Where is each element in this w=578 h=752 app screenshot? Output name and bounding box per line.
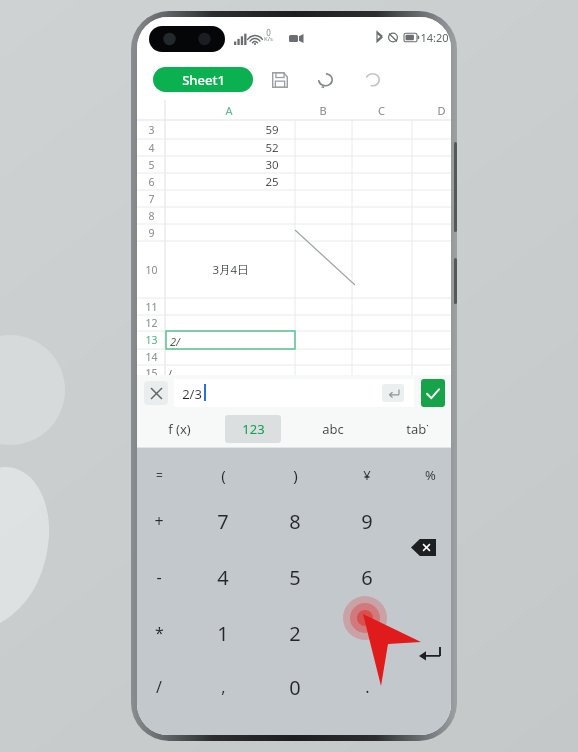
button[interactable]: 5 (264, 556, 326, 598)
button[interactable]: New line (382, 384, 404, 402)
staticText: 14 (145, 350, 158, 364)
staticText: K/s (264, 35, 273, 43)
button[interactable]: 7 (192, 500, 254, 542)
staticText: 2/3 (182, 385, 202, 403)
staticText: , (221, 676, 226, 698)
button[interactable]: Enter (409, 633, 451, 673)
button[interactable]: * (137, 612, 190, 654)
staticText: tab˙ (406, 420, 429, 438)
button[interactable]: Undo (313, 67, 339, 93)
staticText: / (156, 676, 162, 698)
staticText: A (225, 103, 233, 118)
button[interactable]: - (137, 556, 190, 598)
staticText: 7 (217, 508, 229, 535)
staticText: 1 (217, 620, 229, 647)
staticText: . (365, 676, 370, 698)
staticText: - (156, 566, 162, 588)
staticText: 9 (361, 508, 373, 535)
button[interactable]: 1 (192, 612, 254, 654)
button[interactable]: abc (305, 415, 361, 443)
button[interactable]: Cancel (144, 381, 168, 405)
staticText: 15 (145, 366, 158, 380)
button[interactable]: = (137, 454, 190, 496)
button[interactable]: % (399, 454, 451, 496)
button[interactable]: tab˙ (389, 415, 445, 443)
staticText: 30 (265, 157, 279, 173)
staticText: 8 (289, 508, 301, 535)
staticText: 9 (148, 226, 155, 240)
button[interactable]: 6 (336, 556, 398, 598)
staticText: + (154, 510, 164, 532)
button[interactable]: ( (192, 454, 254, 496)
staticText: 8 (148, 209, 155, 223)
staticText: 6 (361, 564, 373, 591)
staticText: 2/ (170, 334, 180, 349)
staticText: 5 (148, 158, 155, 172)
staticText: 7 (148, 192, 155, 206)
button[interactable]: ) (264, 454, 326, 496)
button[interactable]: . (336, 666, 398, 708)
staticText: / (168, 367, 172, 381)
staticText: 13 (145, 333, 158, 347)
button[interactable]: Confirm (421, 379, 445, 407)
button[interactable]: Save (267, 67, 293, 93)
staticText: 11 (145, 300, 158, 314)
staticText: 4 (148, 141, 155, 155)
staticText: ¥ (363, 466, 371, 484)
staticText: f (x) (168, 420, 191, 438)
staticText: C (378, 103, 385, 118)
staticText: 14:20 (420, 30, 449, 45)
button[interactable]: 2 (264, 612, 326, 654)
button[interactable]: / (137, 666, 190, 708)
staticText: 25 (265, 174, 279, 190)
button[interactable]: Sheet1 (153, 67, 253, 92)
button[interactable]: 123 (225, 415, 281, 443)
staticText: D (437, 103, 446, 118)
button[interactable]: 0 (264, 666, 326, 708)
staticText: % (425, 466, 436, 484)
staticText: * (155, 622, 164, 644)
staticText: 52 (265, 140, 279, 156)
staticText: 2 (289, 620, 301, 647)
staticText: 59 (265, 122, 279, 138)
button[interactable]: + (137, 500, 190, 542)
staticText: ( (221, 465, 226, 485)
staticText: abc (322, 420, 344, 438)
staticText: 0 (266, 27, 271, 38)
staticText: 3月4日 (212, 262, 249, 278)
staticText: 123 (242, 420, 265, 438)
button[interactable]: , (192, 666, 254, 708)
button[interactable]: 8 (264, 500, 326, 542)
button[interactable]: Redo (359, 67, 385, 93)
button[interactable]: 4 (192, 556, 254, 598)
staticText: 6 (148, 175, 155, 189)
staticText: ) (293, 465, 298, 485)
staticText: 12 (145, 316, 158, 330)
staticText: B (319, 103, 327, 118)
staticText: Sheet1 (182, 71, 225, 89)
staticText: 0 (289, 674, 301, 701)
button[interactable]: f (x) (147, 415, 211, 443)
button[interactable]: ¥ (336, 454, 398, 496)
staticText: 4 (217, 564, 229, 591)
staticText: 3 (148, 123, 155, 137)
staticText: 10 (145, 263, 158, 277)
button[interactable]: 2/3 (174, 379, 414, 407)
button[interactable]: Backspace (401, 530, 445, 564)
staticText: 5 (289, 564, 301, 591)
staticText: = (156, 467, 163, 483)
button[interactable]: 9 (336, 500, 398, 542)
